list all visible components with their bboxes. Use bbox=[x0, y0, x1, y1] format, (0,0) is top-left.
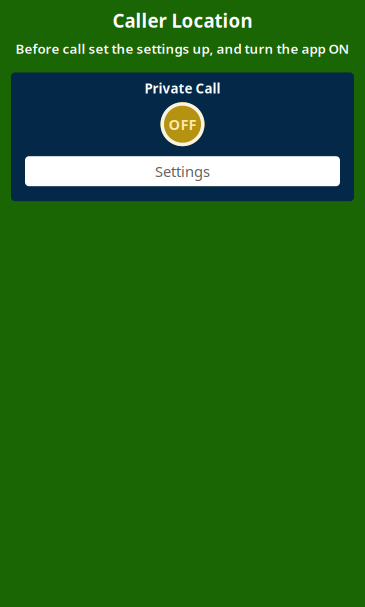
staticText: OFF bbox=[168, 114, 196, 134]
button[interactable]: Private Call, off bbox=[160, 102, 204, 146]
staticText: Caller Location bbox=[112, 8, 252, 33]
button[interactable]: Settings bbox=[25, 156, 340, 186]
staticText: Before call set the settings up, and tur… bbox=[15, 40, 349, 57]
staticText: Private Call bbox=[144, 79, 220, 97]
staticText: Settings bbox=[155, 161, 210, 181]
